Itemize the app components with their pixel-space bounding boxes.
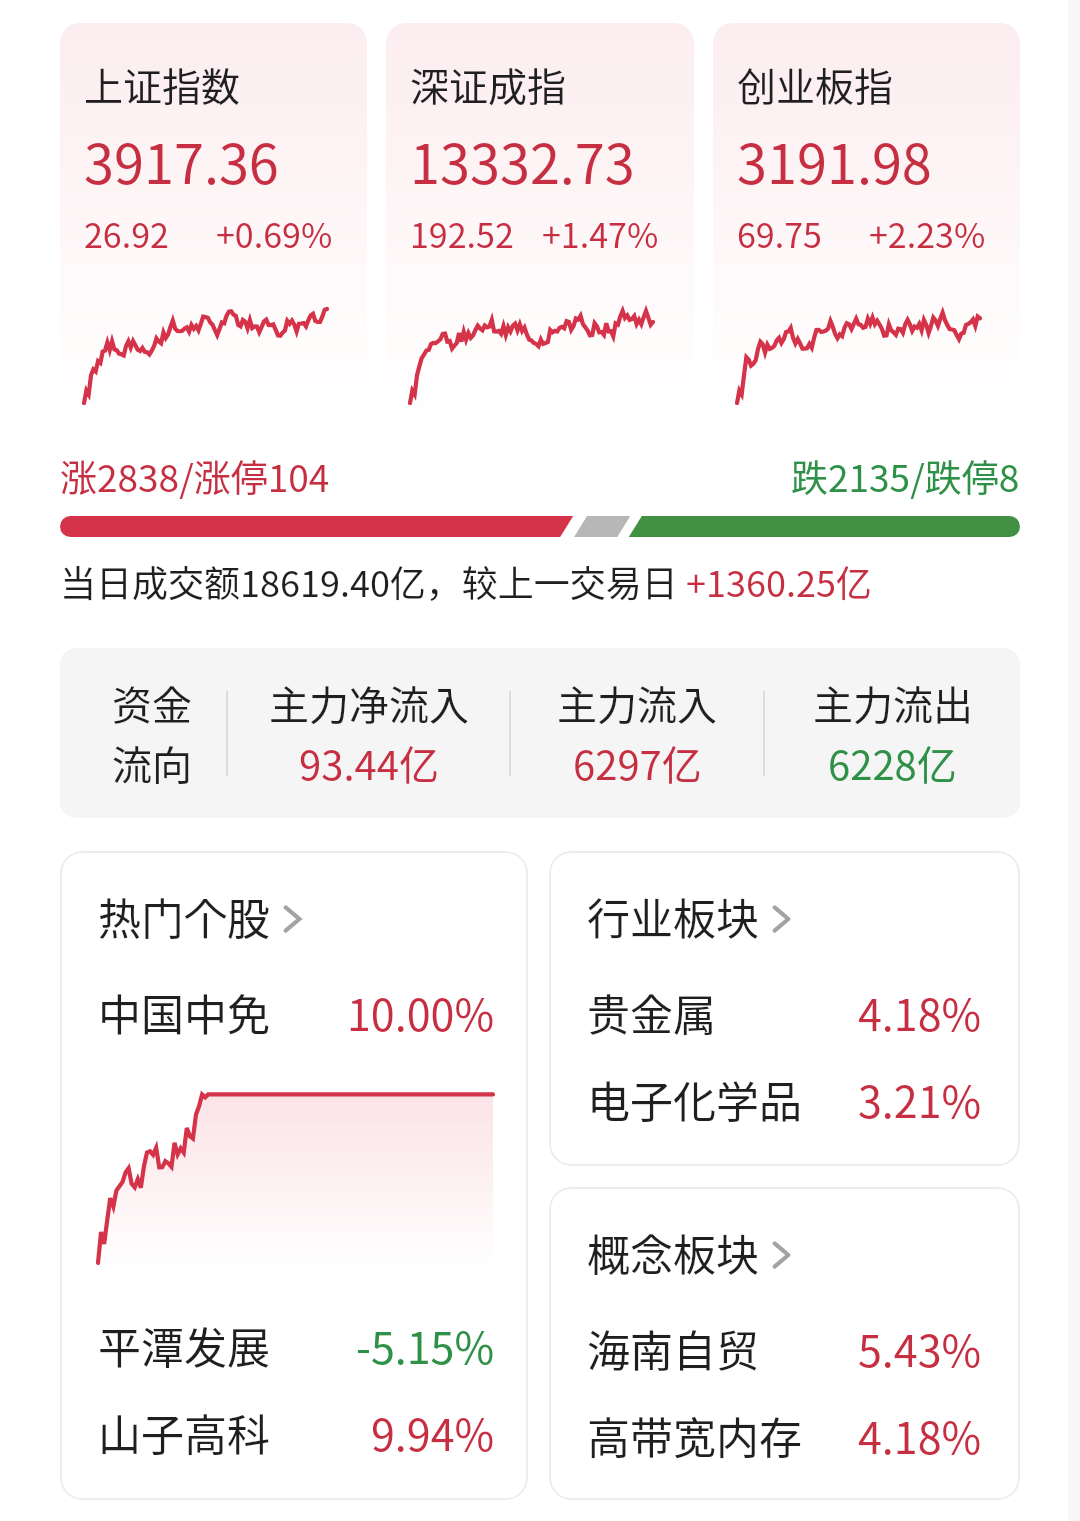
staticText: 海南自贸 (587, 1317, 759, 1379)
staticText: +2.23% (869, 209, 986, 258)
staticText: 主力流入 (557, 674, 717, 732)
button[interactable]: 中国中免 (98, 981, 495, 1043)
button[interactable]: 行业板块 (549, 851, 1020, 1166)
button[interactable]: 热门个股 (60, 851, 528, 1500)
staticText: 主力流出 (813, 674, 973, 732)
button[interactable]: 热门个股 (98, 885, 308, 947)
staticText: 93.44亿 (299, 734, 439, 792)
staticText: 4.18% (858, 981, 982, 1043)
button[interactable]: 山子高科 (98, 1401, 495, 1463)
button[interactable]: 贵金属 (587, 981, 982, 1043)
button[interactable]: 深证成指 (386, 23, 694, 427)
staticText: 3.21% (858, 1068, 982, 1130)
staticText: 3191.98 (737, 121, 932, 199)
staticText: 6297亿 (573, 734, 702, 792)
button[interactable]: 资金 (60, 648, 1020, 818)
staticText: 6228亿 (828, 734, 957, 792)
staticText: 69.75 (737, 209, 822, 258)
staticText: 主力净流入 (269, 674, 469, 732)
staticText: 深证成指 (410, 56, 567, 112)
staticText: 创业板指 (737, 56, 894, 112)
button[interactable]: 创业板指 (713, 23, 1020, 427)
staticText: 行业板块 (587, 885, 759, 947)
staticText: 资金 (112, 674, 192, 732)
staticText: 概念板块 (587, 1221, 759, 1283)
staticText: 山子高科 (98, 1401, 270, 1463)
staticText: 高带宽内存 (587, 1404, 802, 1466)
staticText: 平潭发展 (98, 1314, 270, 1376)
staticText: 当日成交额18619.40亿，较上一交易日 (60, 555, 686, 607)
staticText: 9.94% (371, 1401, 495, 1463)
staticText: 涨2838/涨停104 (60, 449, 330, 503)
button[interactable]: 电子化学品 (587, 1068, 982, 1130)
other: More 概念板块 (765, 1239, 797, 1271)
button[interactable]: 上证指数 (60, 23, 367, 427)
staticText: 3917.36 (84, 121, 279, 199)
button[interactable]: 概念板块 (549, 1187, 1020, 1500)
other: More hot stocks (276, 903, 308, 935)
staticText: 中国中免 (98, 981, 270, 1043)
staticText: 10.00% (347, 981, 495, 1043)
button[interactable]: 高带宽内存 (587, 1404, 982, 1466)
button[interactable]: 行业板块 (587, 885, 797, 947)
button[interactable]: 平潭发展 (98, 1314, 495, 1376)
staticText: 26.92 (84, 209, 169, 258)
other: More 行业板块 (765, 903, 797, 935)
staticText: 流向 (112, 734, 192, 792)
staticText: 13332.73 (410, 121, 635, 199)
staticText: 4.18% (858, 1404, 982, 1466)
staticText: -5.15% (356, 1314, 495, 1376)
staticText: 上证指数 (84, 56, 241, 112)
staticText: 192.52 (410, 209, 514, 258)
staticText: +1.47% (542, 209, 659, 258)
staticText: 热门个股 (98, 885, 270, 947)
staticText: 电子化学品 (587, 1068, 802, 1130)
staticText: +0.69% (216, 209, 333, 258)
staticText: 5.43% (858, 1317, 982, 1379)
button[interactable]: 海南自贸 (587, 1317, 982, 1379)
button[interactable]: 概念板块 (587, 1221, 797, 1283)
staticText: 贵金属 (587, 981, 716, 1043)
staticText: 跌2135/跌停8 (791, 449, 1020, 503)
staticText: +1360.25亿 (686, 555, 872, 607)
